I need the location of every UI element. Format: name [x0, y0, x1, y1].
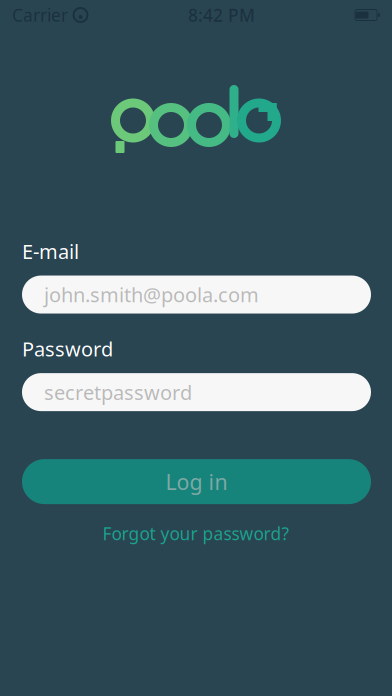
staticText: Log in — [165, 467, 227, 496]
staticText: secretpassword — [44, 379, 192, 405]
button[interactable]: Forgot your password? — [92, 518, 299, 549]
staticText: E-mail — [22, 238, 79, 265]
button[interactable]: Log in — [22, 459, 371, 504]
button[interactable]: secretpassword — [22, 373, 371, 411]
staticText: Carrier — [12, 3, 68, 26]
button[interactable]: john.smith@poola.com — [22, 276, 371, 314]
staticText: Password — [22, 336, 113, 362]
staticText: Forgot your password? — [102, 522, 289, 545]
staticText: 8:42 PM — [188, 3, 255, 26]
staticText: john.smith@poola.com — [44, 281, 259, 308]
